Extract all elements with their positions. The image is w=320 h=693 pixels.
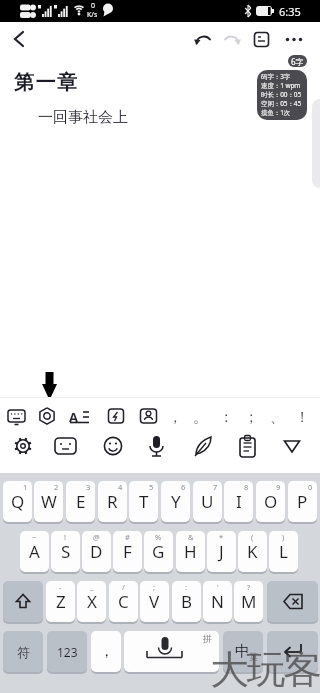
button[interactable] — [3, 400, 31, 429]
button[interactable]: K — [238, 531, 267, 572]
button[interactable] — [33, 400, 61, 429]
button[interactable]: 123 — [47, 631, 87, 672]
button[interactable]: W — [34, 481, 63, 522]
button[interactable]: 6字 — [288, 55, 307, 67]
button[interactable]: 、 — [265, 401, 290, 432]
button[interactable]: E — [66, 481, 95, 522]
staticText: J — [219, 540, 224, 563]
button[interactable] — [283, 30, 305, 52]
button[interactable] — [222, 30, 242, 50]
staticText: : — [185, 582, 188, 592]
button[interactable]: F — [113, 531, 142, 572]
button[interactable]: H — [176, 531, 205, 572]
button[interactable] — [253, 31, 271, 49]
staticText: ! — [64, 532, 67, 542]
button[interactable] — [187, 431, 219, 471]
staticText: 7 — [213, 482, 218, 492]
button[interactable]: R — [98, 481, 127, 522]
staticText: 时长：00：05 — [261, 90, 302, 99]
staticText: # — [125, 532, 130, 542]
staticText: U — [201, 490, 214, 513]
button[interactable]: ， — [163, 401, 188, 432]
button[interactable] — [276, 431, 308, 471]
button[interactable]: ！ — [290, 401, 315, 432]
staticText: ： — [219, 408, 234, 426]
staticText: 大玩客 — [210, 645, 320, 693]
button[interactable]: A — [20, 531, 49, 572]
staticText: X — [87, 590, 97, 613]
staticText: 3 — [86, 482, 91, 492]
button[interactable] — [267, 631, 318, 672]
button[interactable] — [97, 431, 129, 471]
staticText: K — [247, 540, 258, 563]
button[interactable] — [135, 400, 163, 429]
button[interactable] — [193, 30, 213, 50]
staticText: % — [155, 532, 162, 542]
staticText: 英 — [249, 651, 258, 662]
button[interactable]: J — [207, 531, 236, 572]
staticText: 速度：1 wpm — [261, 81, 301, 90]
button[interactable] — [3, 581, 43, 622]
staticText: 摸鱼：1次 — [261, 108, 291, 117]
button[interactable]: ； — [239, 401, 264, 432]
staticText: 拼 — [203, 633, 212, 644]
button[interactable]: G — [144, 531, 173, 572]
button[interactable] — [8, 28, 32, 52]
button[interactable]: N — [203, 581, 232, 622]
button[interactable] — [50, 431, 82, 471]
staticText: * — [219, 532, 224, 542]
button[interactable] — [231, 431, 263, 471]
button[interactable]: U — [193, 481, 222, 522]
button[interactable]: D — [82, 531, 111, 572]
staticText: M — [241, 590, 257, 613]
staticText: Q — [11, 490, 25, 513]
staticText: 5 — [149, 482, 154, 492]
staticText: K/s — [87, 10, 98, 20]
staticText: ' — [217, 582, 219, 592]
button[interactable] — [267, 581, 318, 622]
staticText: H — [184, 540, 197, 563]
button[interactable]: V — [140, 581, 169, 622]
button[interactable]: X — [77, 581, 106, 622]
staticText: ， — [168, 408, 183, 426]
staticText: 空闲：05：45 — [261, 99, 302, 108]
staticText: ~ — [32, 532, 37, 542]
button[interactable]: 符 — [3, 631, 43, 672]
button[interactable]: O — [256, 481, 285, 522]
button[interactable]: ， — [91, 631, 121, 672]
button[interactable] — [65, 400, 93, 429]
staticText: L — [279, 540, 288, 563]
staticText: 一回事社会上 — [38, 108, 128, 127]
button[interactable]: Y — [161, 481, 190, 522]
button[interactable]: M — [234, 581, 263, 622]
staticText: 8 — [244, 482, 249, 492]
staticText: 0 — [308, 482, 313, 492]
button[interactable]: C — [109, 581, 138, 622]
button[interactable]: I — [224, 481, 253, 522]
button[interactable] — [102, 400, 130, 429]
button[interactable]: T — [129, 481, 158, 522]
staticText: 中 — [235, 642, 250, 661]
staticText: A — [29, 540, 40, 563]
staticText: C — [118, 590, 129, 613]
staticText: 第一章 — [14, 70, 79, 95]
button[interactable]: Q — [3, 481, 32, 522]
button[interactable] — [124, 631, 219, 672]
button[interactable]: ： — [214, 401, 239, 432]
staticText: B — [181, 590, 193, 613]
staticText: D — [90, 540, 103, 563]
button[interactable]: S — [51, 531, 80, 572]
button[interactable]: Z — [46, 581, 75, 622]
button[interactable]: B — [172, 581, 201, 622]
button[interactable] — [140, 431, 172, 471]
staticText: 0 — [91, 1, 96, 11]
button[interactable] — [223, 631, 263, 672]
button[interactable]: P — [288, 481, 317, 522]
staticText: / — [122, 582, 125, 592]
staticText: 6字 — [291, 56, 304, 67]
button[interactable]: 。 — [188, 401, 213, 432]
staticText: ， — [99, 642, 114, 661]
button[interactable]: L — [269, 531, 298, 572]
button[interactable] — [7, 431, 39, 471]
staticText: P — [297, 490, 308, 513]
